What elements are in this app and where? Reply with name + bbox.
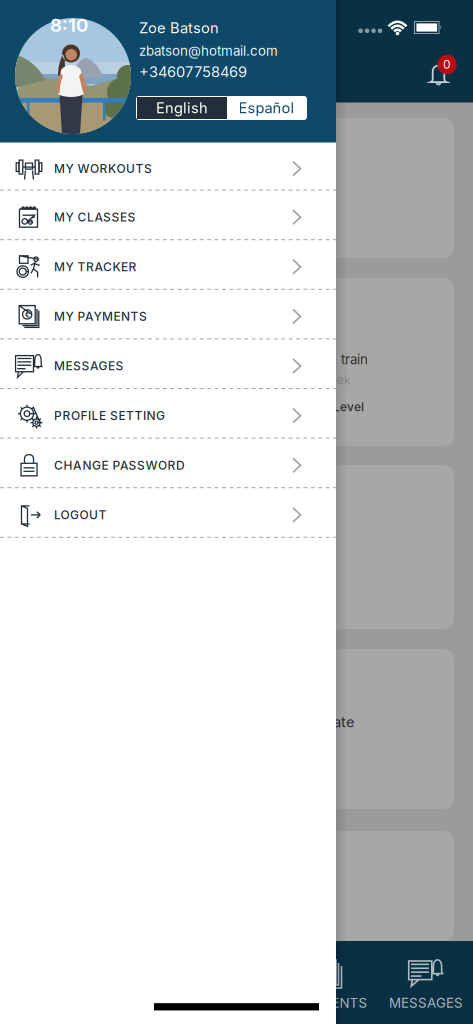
staticText: MY TRACKER bbox=[54, 260, 136, 274]
staticText: MY CLASSES bbox=[54, 210, 135, 224]
button[interactable]: English bbox=[137, 97, 227, 119]
staticText: PROFILE SETTING bbox=[54, 409, 165, 423]
staticText: English bbox=[156, 99, 208, 117]
staticText: LOGOUT bbox=[54, 508, 106, 522]
button[interactable]: € bbox=[0, 292, 336, 341]
button[interactable]: PAYMENTS bbox=[284, 941, 378, 1024]
button[interactable]: CHANGE PASSWORD bbox=[0, 440, 336, 490]
button[interactable]: MESSAGES bbox=[379, 941, 473, 1024]
staticText: Renewal date bbox=[261, 713, 355, 731]
staticText: MY PAYMENTS bbox=[54, 309, 147, 323]
staticText: +34607758469 bbox=[139, 63, 247, 80]
staticText: Español bbox=[238, 99, 294, 117]
staticText: PAYMENTS bbox=[294, 995, 367, 1011]
staticText: Fitness Level bbox=[290, 400, 364, 414]
staticText: Zoe Batson bbox=[139, 19, 219, 36]
button[interactable]: MY TRACKER bbox=[0, 242, 336, 292]
staticText: MESSAGES bbox=[54, 359, 123, 373]
staticText: MESSAGES bbox=[389, 995, 463, 1011]
staticText: 0 bbox=[443, 57, 451, 72]
staticText: CHANGE PASSWORD bbox=[54, 458, 185, 472]
staticText: 8:10 bbox=[50, 14, 88, 36]
button[interactable]: PROFILE SETTING bbox=[0, 391, 336, 440]
button[interactable]: Español bbox=[227, 97, 306, 119]
button[interactable]: MY WORKOUTS bbox=[0, 144, 336, 193]
button[interactable]: Notifications bbox=[415, 48, 459, 92]
staticText: zbatson@hotmail.com bbox=[139, 43, 278, 59]
button[interactable]: MESSAGES bbox=[0, 341, 336, 391]
staticText: € bbox=[25, 310, 30, 319]
staticText: How often do you train bbox=[225, 352, 368, 367]
staticText: 3 times a week bbox=[266, 373, 351, 387]
staticText: MY WORKOUTS bbox=[54, 161, 152, 176]
button[interactable]: LOGOUT bbox=[0, 490, 336, 540]
button[interactable]: MY CLASSES bbox=[0, 192, 336, 242]
